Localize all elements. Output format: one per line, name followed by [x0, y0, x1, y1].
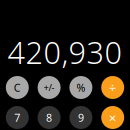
staticText: +/- [44, 81, 55, 94]
button[interactable]: Clear [6, 76, 29, 99]
staticText: 420,930 [7, 32, 122, 72]
button[interactable]: Multiply [101, 106, 124, 129]
staticText: × [109, 109, 117, 126]
button[interactable]: 9 [69, 106, 92, 129]
staticText: C [14, 80, 21, 95]
staticText: % [76, 80, 85, 95]
button[interactable]: Percent [69, 76, 92, 99]
staticText: 8 [46, 110, 52, 125]
staticText: ÷ [109, 79, 117, 96]
button[interactable]: 7 [6, 106, 29, 129]
button[interactable]: Plus Minus [38, 76, 61, 99]
staticText: 7 [14, 110, 20, 125]
staticText: 9 [78, 110, 84, 125]
button[interactable]: Divide [101, 76, 124, 99]
button[interactable]: 8 [38, 106, 61, 129]
